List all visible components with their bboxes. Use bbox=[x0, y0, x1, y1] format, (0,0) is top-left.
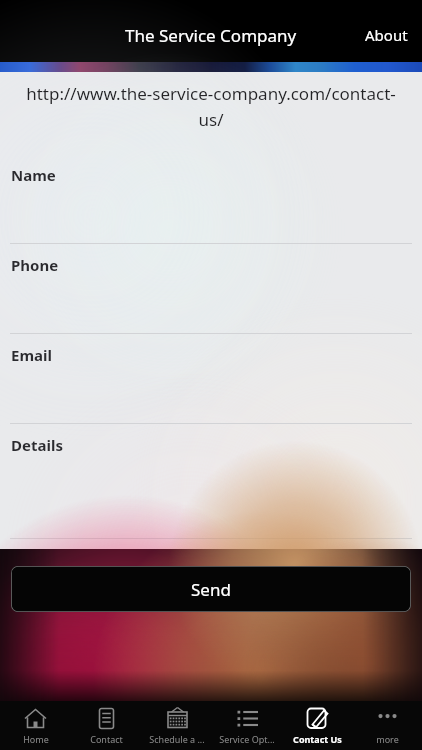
staticText: Contact bbox=[90, 733, 123, 745]
button[interactable]: Schedule a ... bbox=[142, 701, 212, 750]
button[interactable]: About bbox=[351, 17, 422, 53]
button[interactable]: Home bbox=[0, 701, 71, 750]
staticText: Schedule a ... bbox=[149, 733, 205, 745]
staticText: Service Opt... bbox=[219, 733, 275, 745]
button[interactable]: Service Opt... bbox=[212, 701, 282, 750]
staticText: Contact Us bbox=[293, 733, 342, 745]
staticText: Name bbox=[11, 165, 56, 185]
button[interactable]: more bbox=[352, 701, 422, 750]
staticText: Email bbox=[11, 345, 52, 365]
button[interactable]: Email bbox=[0, 334, 422, 424]
button[interactable]: Phone bbox=[0, 244, 422, 334]
staticText: The Service Company bbox=[125, 24, 297, 47]
staticText: Details bbox=[11, 435, 63, 455]
staticText: Home bbox=[23, 733, 49, 745]
button[interactable]: Contact bbox=[71, 701, 142, 750]
button[interactable]: Send bbox=[11, 566, 411, 612]
staticText: Phone bbox=[11, 255, 59, 275]
staticText: About bbox=[365, 25, 408, 45]
button[interactable]: Name bbox=[0, 154, 422, 244]
staticText: more bbox=[376, 733, 399, 745]
button[interactable]: Contact Us bbox=[282, 701, 352, 750]
staticText: Send bbox=[191, 578, 231, 601]
button[interactable]: Details bbox=[0, 424, 422, 539]
staticText: http://www.the-service-company.com/conta… bbox=[18, 82, 404, 131]
